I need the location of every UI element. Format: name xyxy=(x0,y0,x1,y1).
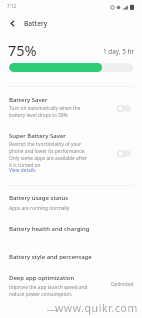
staticText: Battery usage status xyxy=(9,194,69,202)
staticText: 1 day, 5 hr xyxy=(103,47,135,56)
staticText: it is turned on xyxy=(9,162,41,169)
staticText: 75% xyxy=(8,40,37,60)
staticText: Battery Saver xyxy=(9,96,48,104)
button[interactable] xyxy=(0,268,142,298)
button[interactable] xyxy=(0,188,142,214)
button[interactable] xyxy=(0,88,142,122)
staticText: Turn on automatically when the xyxy=(9,105,81,112)
button[interactable] xyxy=(0,216,142,238)
staticText: Optimized xyxy=(111,281,134,287)
staticText: Only some apps are available after xyxy=(9,155,87,162)
staticText: battery level drops to 30% xyxy=(9,112,68,119)
staticText: Apps are running normally xyxy=(9,205,70,212)
staticText: www.quikr.com xyxy=(55,301,138,315)
staticText: Battery xyxy=(24,19,48,28)
staticText: Battery style and percentage xyxy=(9,253,92,261)
staticText: Deep app optimization xyxy=(9,274,75,282)
button[interactable]: Toggle xyxy=(117,105,131,112)
staticText: Restrict the functionality of your xyxy=(9,141,82,148)
button[interactable] xyxy=(0,244,142,266)
staticText: phone and lower its performance. xyxy=(9,148,86,155)
staticText: Battery health and charging xyxy=(9,225,90,233)
staticText: Improve the app launch speed and xyxy=(9,284,88,291)
button[interactable]: Toggle xyxy=(117,150,131,157)
button[interactable]: Back xyxy=(4,15,20,31)
staticText: 7:12 xyxy=(7,3,17,9)
button[interactable]: View details xyxy=(9,167,36,174)
staticText: Super Battery Saver xyxy=(9,132,66,140)
staticText: reduce power consumption. xyxy=(9,291,73,298)
